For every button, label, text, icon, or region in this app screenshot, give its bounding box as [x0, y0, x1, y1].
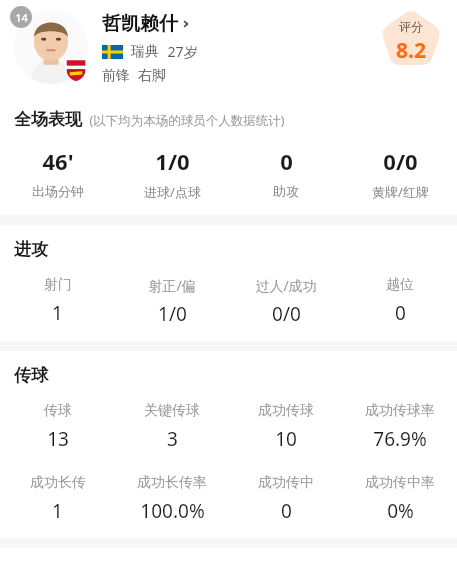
staticText: (以下均为本场的球员个人数据统计) — [89, 112, 285, 129]
staticText: 0 — [280, 146, 293, 176]
staticText: 0/0 — [383, 146, 418, 176]
staticText: 成功传中 — [258, 474, 314, 492]
staticText: 成功长传 — [30, 474, 86, 492]
staticText: 0% — [387, 498, 414, 524]
staticText: 1 — [52, 498, 63, 524]
staticText: 10 — [275, 426, 297, 452]
staticText: 传球 — [14, 365, 48, 386]
staticText: 进球/点球 — [144, 183, 201, 201]
staticText: 成功长传率 — [137, 474, 207, 492]
staticText: 助攻 — [273, 183, 299, 199]
staticText: 右脚 — [138, 67, 166, 85]
staticText: 46' — [42, 146, 74, 176]
staticText: 出场分钟 — [32, 183, 84, 199]
staticText: 0/0 — [272, 301, 301, 327]
staticText: 黄牌/红牌 — [372, 183, 429, 201]
staticText: 越位 — [386, 276, 414, 294]
staticText: 前锋 — [102, 67, 130, 85]
staticText: 评分 — [399, 19, 423, 34]
staticText: 1/0 — [155, 146, 190, 176]
staticText: 1 — [52, 300, 63, 326]
staticText: 瑞典 — [131, 43, 159, 61]
staticText: 13 — [47, 426, 69, 452]
button[interactable]: 球员头像 — [10, 6, 92, 88]
staticText: 14 — [15, 10, 28, 25]
staticText: 1/0 — [158, 301, 187, 327]
staticText: 关键传球 — [144, 402, 200, 420]
staticText: 8.2 — [396, 36, 426, 65]
staticText: 射门 — [44, 276, 72, 294]
button[interactable]: 评分 8.2 — [379, 8, 443, 72]
staticText: 3 — [167, 426, 178, 452]
button[interactable]: 哲凯赖什 — [102, 12, 191, 36]
staticText: 全场表现 — [14, 109, 82, 130]
staticText: 0 — [395, 300, 406, 326]
staticText: 传球 — [44, 402, 72, 420]
staticText: 成功传中率 — [365, 474, 435, 492]
staticText: 过人/成功 — [255, 276, 317, 295]
staticText: 0 — [281, 498, 292, 524]
staticText: 成功传球率 — [365, 402, 435, 420]
other: 瑞典国旗 — [102, 45, 123, 59]
staticText: 100.0% — [140, 498, 205, 524]
staticText: 76.9% — [373, 426, 427, 452]
staticText: 哲凯赖什 — [102, 12, 178, 36]
staticText: 成功传球 — [258, 402, 314, 420]
staticText: 27岁 — [167, 42, 198, 61]
staticText: 进攻 — [14, 239, 48, 260]
staticText: 射正/偏 — [148, 276, 196, 295]
